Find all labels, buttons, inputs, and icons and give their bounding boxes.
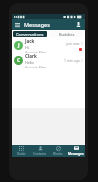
button[interactable]: C bbox=[12, 53, 85, 68]
staticText: Dialer bbox=[17, 152, 26, 156]
staticText: Hello bbox=[25, 60, 34, 65]
button[interactable]: New message bbox=[73, 19, 84, 30]
staticText: Contacts bbox=[33, 152, 47, 156]
staticText: Account: Mine bbox=[25, 51, 47, 53]
staticText: C bbox=[17, 57, 21, 64]
button[interactable]: Dialer bbox=[12, 145, 31, 157]
staticText: Hi bbox=[25, 45, 29, 50]
staticText: Conversations bbox=[16, 32, 44, 37]
staticText: Messages bbox=[68, 152, 84, 156]
staticText: J bbox=[18, 42, 20, 49]
staticText: Jack bbox=[25, 38, 35, 44]
staticText: Clark bbox=[25, 53, 37, 59]
staticText: Buddies bbox=[59, 32, 75, 37]
button[interactable]: Conversations bbox=[13, 31, 47, 37]
button[interactable]: Messages bbox=[67, 145, 85, 157]
button[interactable]: Blocks bbox=[49, 145, 67, 157]
button[interactable]: Buddies bbox=[49, 31, 84, 37]
staticText: 1 min ago bbox=[64, 58, 80, 63]
button[interactable]: Contacts bbox=[31, 145, 49, 157]
staticText: Blocks bbox=[53, 152, 63, 156]
staticText: just now bbox=[66, 41, 80, 46]
button[interactable]: J bbox=[12, 38, 85, 53]
button[interactable]: Open navigation menu bbox=[12, 19, 23, 30]
staticText: Account: Mine bbox=[25, 66, 47, 68]
staticText: Messages bbox=[24, 21, 50, 28]
